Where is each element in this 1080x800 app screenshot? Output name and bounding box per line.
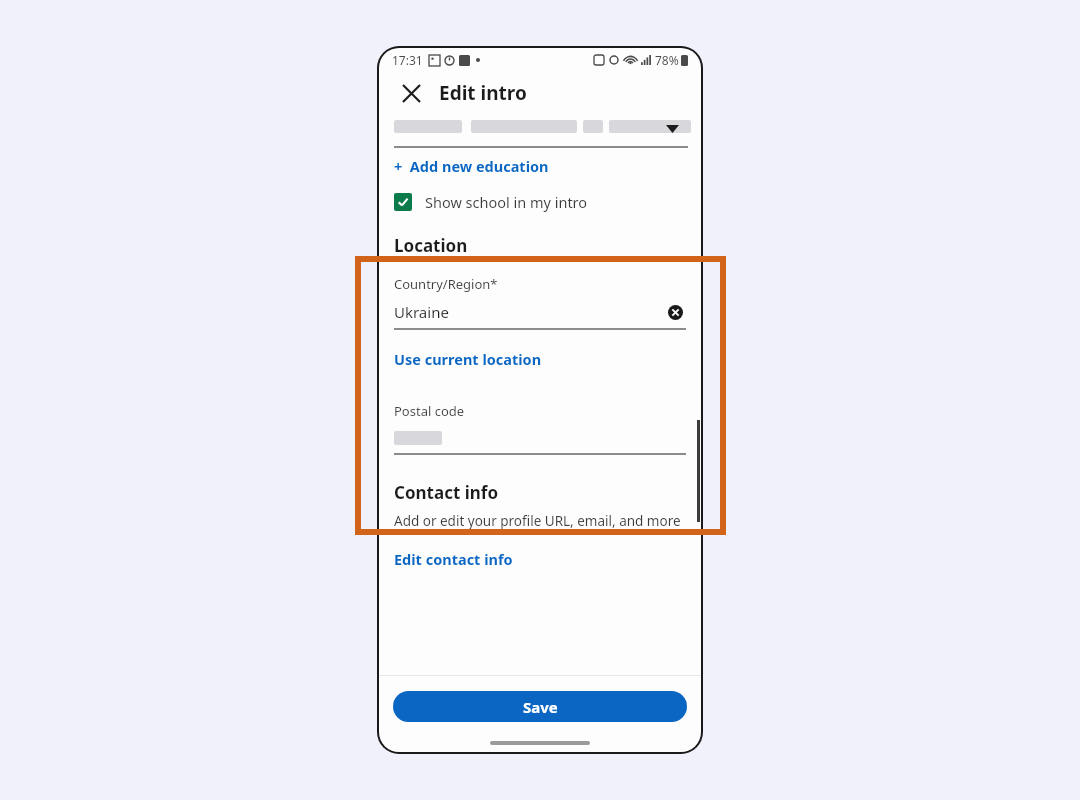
staticText: Use current location xyxy=(394,349,542,369)
staticText: Country/Region* xyxy=(394,275,498,293)
staticText: Edit contact info xyxy=(394,549,513,569)
staticText: 17:31 xyxy=(392,52,423,68)
button[interactable]: Edit contact info xyxy=(394,546,686,572)
button[interactable]: Show school in my intro xyxy=(379,184,701,220)
staticText: Postal code xyxy=(394,402,465,420)
button[interactable]: Close xyxy=(395,77,427,109)
button[interactable] xyxy=(394,427,686,455)
button[interactable]: Save xyxy=(393,691,687,722)
staticText: Location xyxy=(394,234,468,257)
staticText: Edit intro xyxy=(439,80,527,106)
button[interactable]: Clear xyxy=(664,301,686,323)
staticText: Show school in my intro xyxy=(425,192,588,212)
staticText: Add or edit your profile URL, email, and… xyxy=(394,512,681,530)
button[interactable]: Use current location xyxy=(394,346,686,372)
staticText: 78% xyxy=(655,52,679,68)
button[interactable] xyxy=(379,114,701,148)
button[interactable]: Ukraine xyxy=(394,300,686,330)
staticText: + Add new education xyxy=(394,156,549,176)
staticText: Save xyxy=(523,697,558,717)
button[interactable]: + Add new education xyxy=(379,148,701,184)
staticText: Ukraine xyxy=(394,302,449,322)
staticText: Contact info xyxy=(394,481,499,504)
